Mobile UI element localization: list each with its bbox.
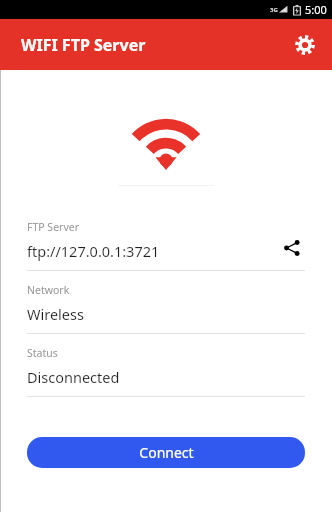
button[interactable]: Network [0, 283, 332, 346]
staticText: Wireless [27, 304, 84, 324]
staticText: ftp://127.0.0.1:3721 [27, 241, 160, 261]
staticText: Status [27, 346, 58, 360]
staticText: WIFI FTP Server [21, 34, 146, 56]
button[interactable]: Status [0, 346, 332, 409]
staticText: Disconnected [27, 367, 120, 387]
staticText: FTP Server [27, 220, 79, 234]
staticText: 3G [270, 6, 278, 14]
staticText: Connect [139, 443, 194, 462]
button[interactable]: Connect [27, 437, 305, 468]
button[interactable]: FTP Server [0, 220, 332, 283]
button[interactable]: Share [279, 235, 305, 261]
button[interactable]: Settings [288, 28, 322, 62]
staticText: Network [27, 283, 70, 297]
staticText: 5:00 [305, 2, 327, 17]
